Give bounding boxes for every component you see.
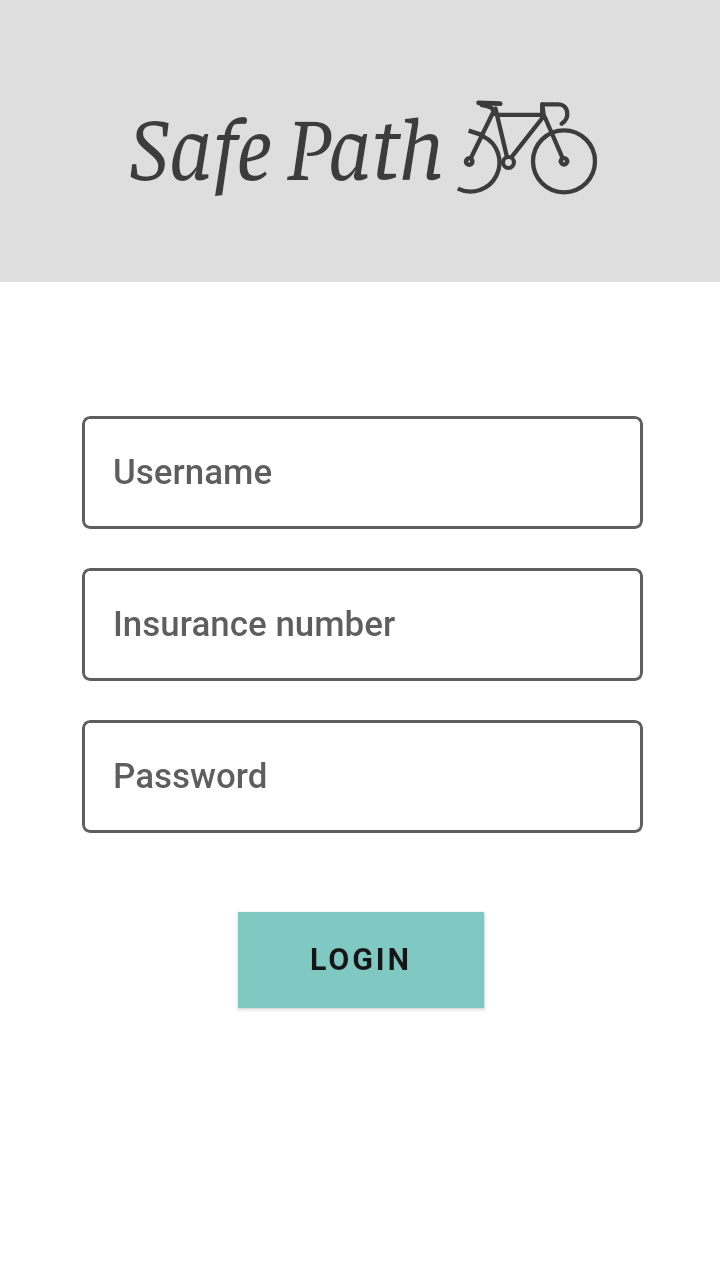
staticText: Insurance number (113, 604, 396, 645)
button[interactable]: LOGIN (238, 912, 484, 1008)
button[interactable]: Insurance number (82, 568, 643, 681)
staticText: Password (113, 756, 268, 797)
button[interactable]: Password (82, 720, 643, 833)
staticText: LOGIN (310, 942, 412, 978)
staticText: Safe Path (129, 86, 445, 199)
button[interactable]: Username (82, 416, 643, 529)
staticText: Username (113, 452, 273, 493)
other: Bicycle (455, 96, 605, 198)
